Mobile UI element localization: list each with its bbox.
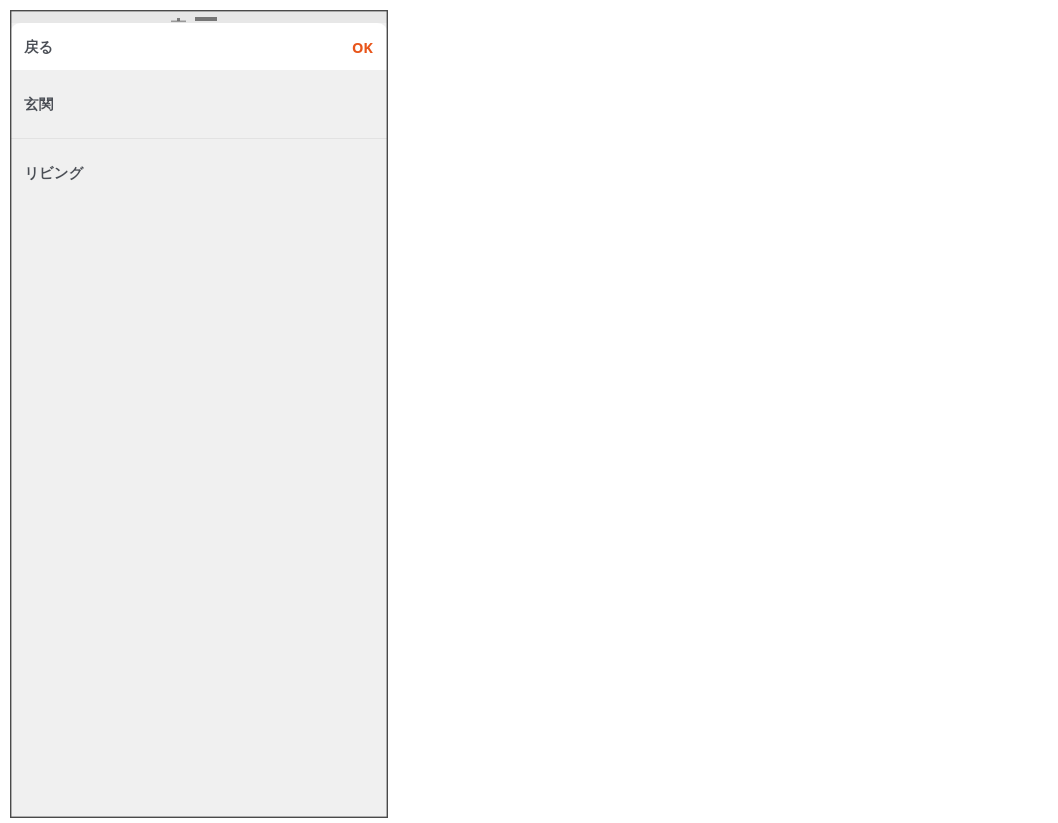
button[interactable]: リビング [10,139,388,207]
staticText: OK [351,37,373,57]
button[interactable]: 戻る [10,23,66,70]
staticText: リビング [24,164,84,182]
staticText: 玄関 [24,95,53,113]
button[interactable]: 玄関 [10,70,388,138]
button[interactable]: OK [337,23,388,70]
staticText: 戻る [24,38,54,56]
